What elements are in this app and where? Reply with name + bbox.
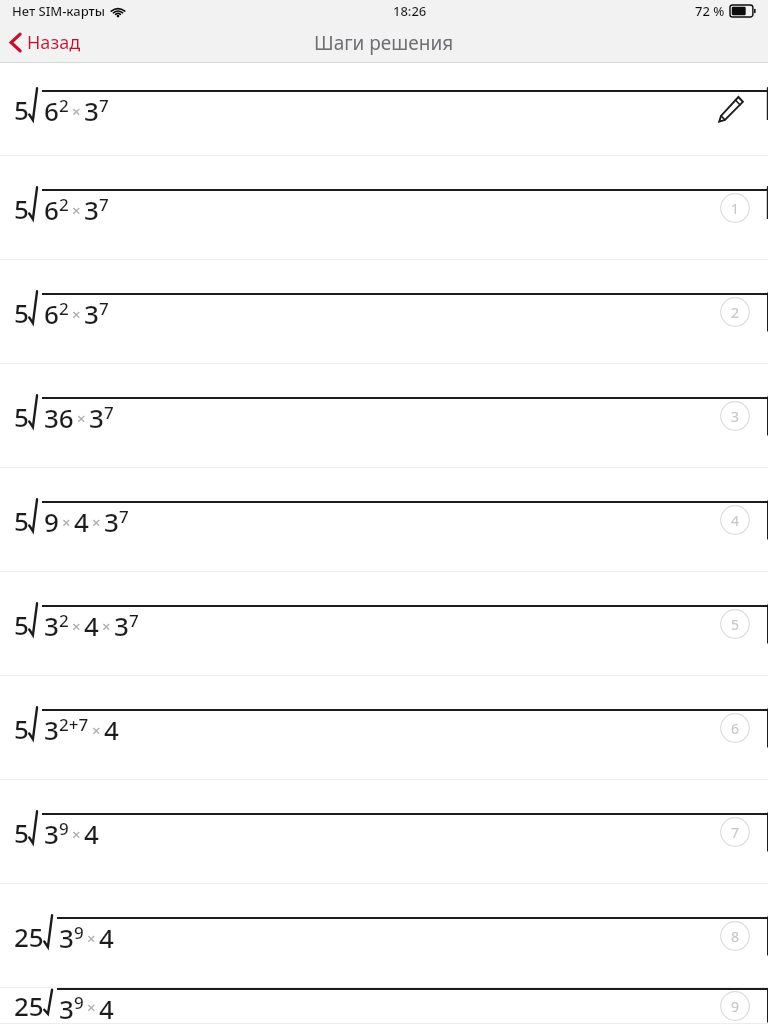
staticText: 5	[14, 295, 29, 330]
staticText: 36	[44, 400, 74, 435]
staticText: 3	[84, 296, 99, 331]
staticText: 4	[84, 816, 99, 851]
button[interactable]: 25	[0, 884, 768, 988]
staticText: 4	[99, 991, 114, 1023]
button[interactable]: 5	[0, 156, 768, 260]
staticText: 4	[99, 920, 114, 955]
button[interactable]: 5	[0, 572, 768, 676]
staticText: ×	[102, 616, 111, 636]
button[interactable]: Назад	[0, 24, 95, 61]
staticText: ×	[92, 720, 101, 740]
button[interactable]: 25	[0, 988, 768, 1024]
staticText: Шаги решения	[314, 30, 454, 56]
staticText: 25	[14, 988, 44, 1023]
staticText: 3	[104, 504, 119, 539]
button[interactable]: 5	[0, 676, 768, 780]
staticText: 5	[14, 815, 29, 850]
staticText: ×	[62, 512, 71, 532]
staticText: 7	[119, 505, 129, 528]
staticText: 6	[731, 719, 740, 738]
staticText: 6	[44, 296, 59, 331]
staticText: 5	[14, 607, 29, 642]
staticText: 7	[99, 94, 109, 117]
staticText: 2	[59, 609, 69, 632]
staticText: 3	[59, 991, 74, 1023]
staticText: 1	[731, 199, 740, 218]
staticText: 3	[84, 93, 99, 128]
staticText: 3	[89, 400, 104, 435]
staticText: 3	[44, 816, 59, 851]
staticText: ×	[72, 200, 81, 220]
staticText: 7	[99, 297, 109, 320]
staticText: 4	[84, 608, 99, 643]
staticText: ×	[72, 616, 81, 636]
staticText: 25	[14, 919, 44, 954]
staticText: 9	[59, 817, 69, 840]
staticText: Назад	[27, 30, 81, 55]
staticText: 3	[59, 920, 74, 955]
button[interactable]: Edit expression	[710, 89, 750, 129]
staticText: 5	[14, 92, 29, 127]
button[interactable]: 5	[0, 468, 768, 572]
staticText: 9	[44, 504, 59, 539]
staticText: 9	[74, 991, 84, 1014]
staticText: ×	[72, 824, 81, 844]
staticText: 9	[731, 997, 740, 1016]
staticText: 6	[44, 192, 59, 227]
staticText: ×	[92, 512, 101, 532]
staticText: 3	[84, 192, 99, 227]
staticText: 4	[74, 504, 89, 539]
staticText: 2	[59, 94, 69, 117]
button[interactable]: 5	[0, 364, 768, 468]
staticText: 2	[59, 297, 69, 320]
staticText: 3	[731, 407, 740, 426]
staticText: 3	[44, 608, 59, 643]
staticText: 9	[74, 921, 84, 944]
staticText: 72 %	[695, 2, 725, 20]
staticText: 5	[14, 711, 29, 746]
staticText: 2	[731, 303, 740, 322]
staticText: 3	[114, 608, 129, 643]
staticText: 7	[104, 401, 114, 424]
staticText: Нет SIM-карты	[12, 2, 106, 20]
staticText: 7	[129, 609, 139, 632]
staticText: 5	[731, 615, 740, 634]
button[interactable]: 5	[0, 260, 768, 364]
staticText: 5	[14, 191, 29, 226]
staticText: ×	[87, 928, 96, 948]
staticText: ×	[72, 304, 81, 324]
button[interactable]: 5	[0, 63, 768, 156]
staticText: 3	[44, 712, 59, 747]
staticText: ×	[72, 101, 81, 121]
staticText: 6	[44, 93, 59, 128]
staticText: 5	[14, 503, 29, 538]
staticText: 5	[14, 399, 29, 434]
staticText: 8	[731, 927, 740, 946]
staticText: 2+7	[59, 713, 89, 736]
button[interactable]: 5	[0, 780, 768, 884]
staticText: 7	[731, 823, 740, 842]
staticText: 4	[731, 511, 740, 530]
staticText: 7	[99, 193, 109, 216]
staticText: ×	[87, 997, 96, 1017]
staticText: 2	[59, 193, 69, 216]
staticText: ×	[77, 408, 86, 428]
staticText: 4	[104, 712, 119, 747]
staticText: 18:26	[393, 2, 427, 20]
